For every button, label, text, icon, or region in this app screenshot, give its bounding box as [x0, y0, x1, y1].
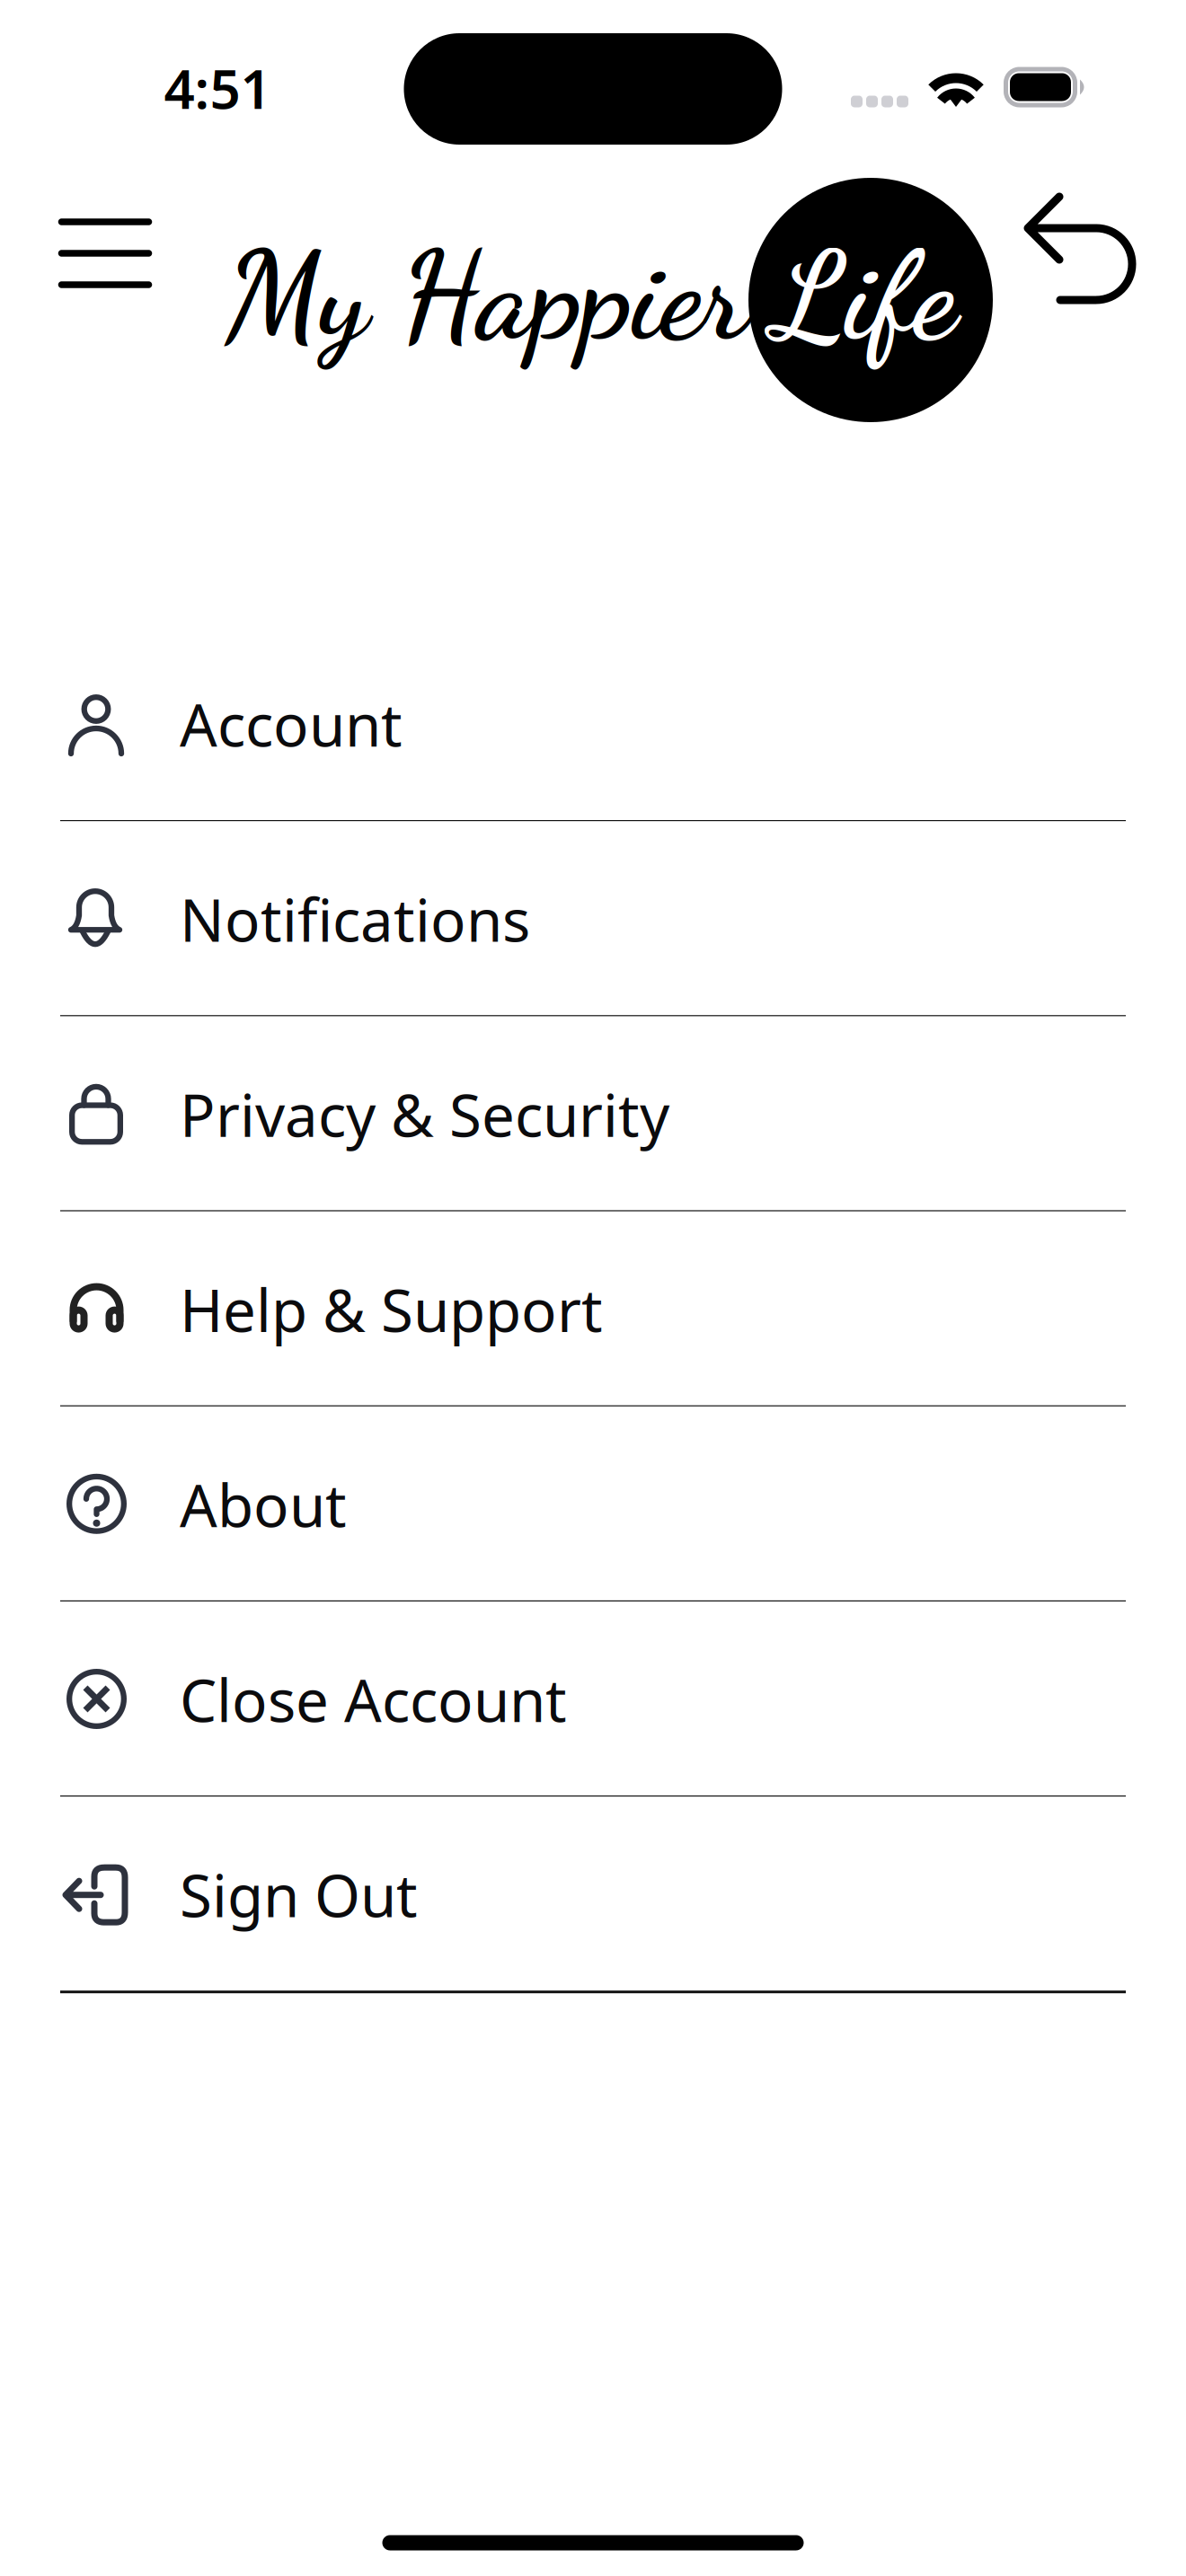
button[interactable]: Close Account [0, 1601, 1186, 1797]
staticText: Sign Out [180, 1855, 418, 1933]
button[interactable]: Notifications [0, 821, 1186, 1016]
staticText: Life [772, 223, 956, 370]
staticText: About [180, 1465, 347, 1543]
staticText: Account [180, 685, 403, 763]
button[interactable]: Help & Support [0, 1211, 1186, 1406]
button[interactable]: Menu [58, 218, 152, 288]
staticText: Help & Support [180, 1270, 603, 1348]
staticText: Privacy & Security [180, 1075, 669, 1153]
button[interactable]: About [0, 1406, 1186, 1601]
staticText: Close Account [180, 1660, 567, 1738]
staticText: My Happier [225, 223, 748, 370]
staticText: Notifications [180, 880, 530, 958]
button[interactable]: Back [1022, 195, 1137, 303]
staticText: 4:51 [164, 52, 271, 124]
button[interactable]: Sign Out [0, 1797, 1186, 1992]
button[interactable]: Privacy & Security [0, 1016, 1186, 1211]
button[interactable]: Account [0, 626, 1186, 821]
